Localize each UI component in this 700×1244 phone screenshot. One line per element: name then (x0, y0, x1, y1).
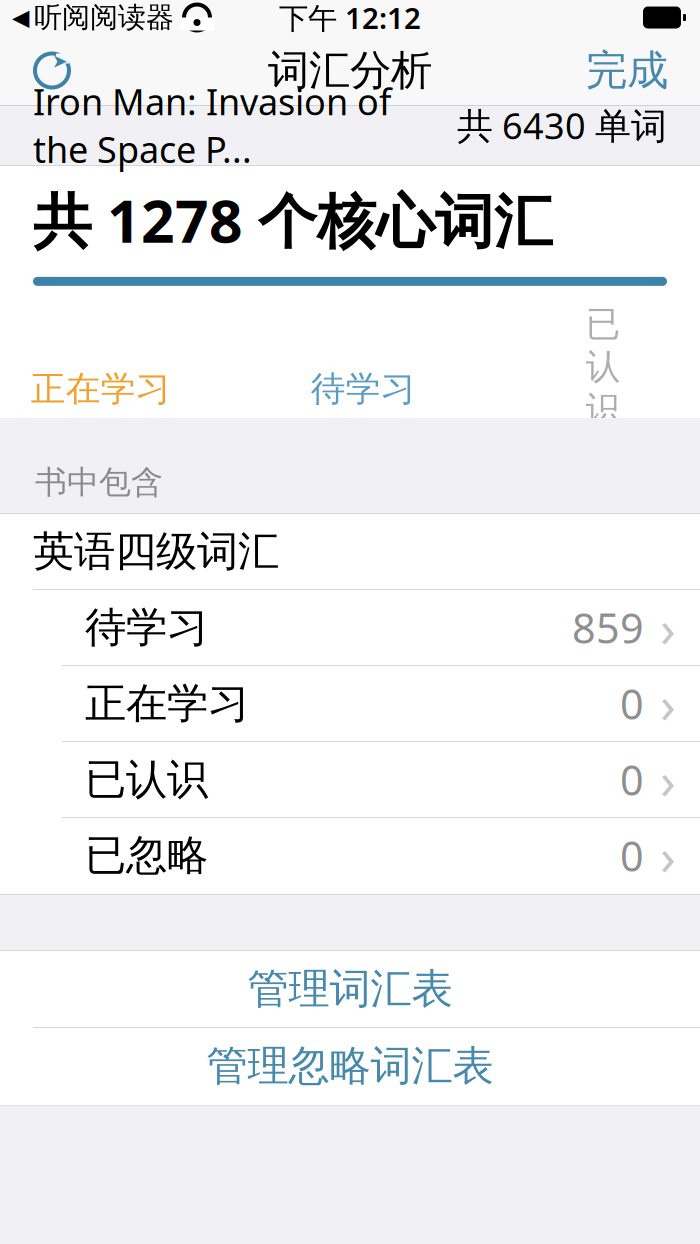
button[interactable]: 正在学习 (0, 666, 700, 742)
staticText: 859 (572, 600, 644, 655)
staticText: 0 (620, 676, 644, 731)
button[interactable]: 待学习 (0, 590, 700, 666)
staticText: › (660, 822, 676, 889)
staticText: Iron Man: Invasion of the Space P... (33, 77, 391, 173)
staticText: ➤ (52, 50, 68, 72)
button[interactable]: 管理忽略词汇表 (0, 1028, 700, 1105)
staticText: 听阅阅读器 (34, 0, 174, 35)
staticText: ◀ (12, 5, 29, 30)
staticText: 0 个 (31, 412, 97, 460)
staticText: 管理词汇表 (247, 964, 452, 1014)
staticText: 书中包含 (35, 463, 163, 502)
staticText: › (660, 670, 676, 737)
staticText: 1278 个 (311, 412, 440, 460)
staticText: 已认识 (586, 303, 621, 431)
button[interactable]: 已忽略 (0, 818, 700, 894)
staticText: 下午 12:12 (279, 0, 421, 37)
staticText: 英语四级词汇 (33, 526, 279, 577)
staticText: 正在学习 (85, 678, 249, 729)
staticText: › (660, 746, 676, 813)
staticText: 词汇分析 (268, 45, 432, 96)
staticText: › (660, 594, 676, 661)
staticText: 已认识 (85, 754, 208, 805)
staticText: 共 6430 单词 (457, 101, 667, 149)
staticText: 共 1278 个核心词汇 (33, 181, 553, 259)
button[interactable]: 已认识 (0, 742, 700, 818)
button[interactable]: 刷新 (24, 42, 80, 98)
staticText: 0 个 (586, 433, 622, 525)
staticText: 管理忽略词汇表 (206, 1041, 493, 1091)
staticText: 完成 (586, 45, 668, 96)
button[interactable]: 完成 (580, 42, 674, 98)
staticText: 待学习 (85, 602, 208, 653)
staticText: 正在学习 (31, 368, 171, 410)
staticText: 0 (620, 828, 644, 883)
staticText: 0 (620, 752, 644, 807)
staticText: 已忽略 (85, 830, 208, 881)
button[interactable]: 管理词汇表 (0, 951, 700, 1028)
staticText: 待学习 (311, 368, 416, 410)
